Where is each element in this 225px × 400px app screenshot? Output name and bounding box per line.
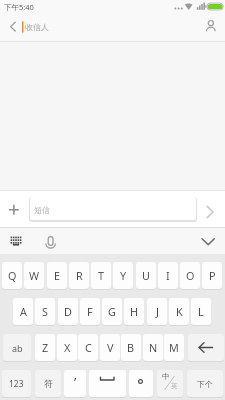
staticText: Y xyxy=(120,268,127,283)
staticText: S xyxy=(42,304,48,319)
button[interactable]: V xyxy=(100,334,120,361)
button[interactable]: Y xyxy=(113,262,133,289)
button[interactable]: R xyxy=(69,262,89,289)
staticText: V xyxy=(107,340,114,355)
staticText: M xyxy=(169,340,179,355)
button[interactable] xyxy=(198,233,219,251)
staticText: U xyxy=(142,268,150,283)
button[interactable]: P xyxy=(202,262,222,289)
staticText: 下午5:40 xyxy=(4,2,34,12)
button[interactable]: 下个 xyxy=(187,370,223,397)
staticText: Q xyxy=(8,268,17,283)
button[interactable] xyxy=(4,18,26,36)
button[interactable] xyxy=(200,14,222,36)
button[interactable]: M xyxy=(164,334,184,361)
button[interactable]: Z xyxy=(35,334,55,361)
staticText: P xyxy=(209,268,216,283)
staticText: B xyxy=(127,340,135,355)
staticText: I xyxy=(166,268,170,283)
staticText: 123 xyxy=(9,378,24,390)
button[interactable]: G xyxy=(102,298,122,325)
staticText: D xyxy=(64,304,72,319)
staticText: A xyxy=(20,304,27,319)
staticText: R xyxy=(76,268,83,283)
button[interactable]: J xyxy=(147,298,167,325)
staticText: 下个 xyxy=(197,379,213,389)
button[interactable]: W xyxy=(24,262,44,289)
staticText: J xyxy=(156,304,159,319)
button[interactable]: D xyxy=(58,298,78,325)
button[interactable] xyxy=(40,232,61,251)
button[interactable] xyxy=(30,197,196,220)
staticText: K xyxy=(176,304,183,319)
staticText: C xyxy=(85,340,92,355)
button[interactable]: F xyxy=(80,298,100,325)
staticText: 中 xyxy=(162,372,170,381)
staticText: X xyxy=(64,340,71,355)
staticText: G xyxy=(108,304,116,319)
button[interactable] xyxy=(129,370,153,397)
button[interactable]: 符 xyxy=(35,370,61,397)
button[interactable]: I xyxy=(158,262,178,289)
button[interactable]: B xyxy=(121,334,141,361)
button[interactable]: N xyxy=(143,334,163,361)
button[interactable]: C xyxy=(78,334,98,361)
button[interactable]: U xyxy=(136,262,156,289)
button[interactable]: T xyxy=(91,262,111,289)
staticText: L xyxy=(198,304,204,319)
button[interactable]: S xyxy=(35,298,55,325)
staticText: E xyxy=(54,268,61,283)
button[interactable]: E xyxy=(47,262,67,289)
button[interactable]: L xyxy=(191,298,211,325)
staticText: ab xyxy=(12,342,23,354)
button[interactable]: X xyxy=(57,334,77,361)
staticText: 符 xyxy=(44,378,53,389)
staticText: N xyxy=(149,340,158,355)
button[interactable] xyxy=(89,370,126,397)
button[interactable]: A xyxy=(13,298,33,325)
button[interactable]: 中 xyxy=(157,370,183,397)
staticText: T xyxy=(98,268,105,283)
button[interactable]: K xyxy=(169,298,189,325)
staticText: F xyxy=(87,304,93,319)
button[interactable] xyxy=(4,200,24,220)
button[interactable]: ab xyxy=(3,334,31,361)
staticText: W xyxy=(29,268,40,283)
button[interactable] xyxy=(188,334,224,361)
button[interactable]: ’ xyxy=(64,370,86,397)
staticText: H xyxy=(130,304,139,319)
button[interactable] xyxy=(4,232,28,251)
staticText: O xyxy=(186,268,195,283)
staticText: ’ xyxy=(74,373,77,391)
button[interactable]: 123 xyxy=(2,370,31,397)
button[interactable]: H xyxy=(124,298,144,325)
button[interactable] xyxy=(200,202,220,222)
button[interactable]: O xyxy=(180,262,200,289)
staticText: 短信 xyxy=(34,205,50,215)
staticText: 英 xyxy=(171,382,178,390)
staticText: Z xyxy=(42,340,49,355)
staticText: 收信人 xyxy=(25,22,49,32)
button[interactable]: Q xyxy=(2,262,22,289)
